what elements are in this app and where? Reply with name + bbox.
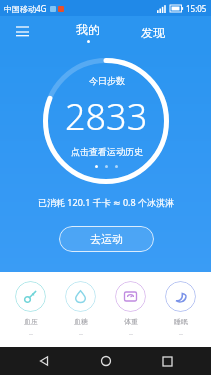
staticText: 去运动 <box>90 232 123 246</box>
staticText: 点击查看运动历史 <box>71 146 143 157</box>
staticText: 已消耗 120.1 千卡 ≈ 0.8 个冰淇淋 <box>38 196 174 208</box>
button[interactable]: 体重 <box>111 281 150 338</box>
staticText: 睡眠 <box>174 317 188 326</box>
button[interactable]: 我的 <box>68 20 108 45</box>
button[interactable]: 睡眠 <box>161 281 200 338</box>
staticText: 血压 <box>24 317 38 326</box>
button[interactable]: Home <box>89 347 123 375</box>
staticText: -- <box>29 330 33 338</box>
staticText: -- <box>179 330 183 338</box>
staticText: 2833 <box>65 92 148 141</box>
staticText: 血糖 <box>74 317 88 326</box>
staticText: -- <box>79 330 83 338</box>
staticText: 体重 <box>124 317 138 326</box>
staticText: 15:05 <box>186 3 207 14</box>
staticText: -- <box>129 330 133 338</box>
button[interactable]: 血压 <box>11 281 50 338</box>
button[interactable]: 血糖 <box>61 281 100 338</box>
button[interactable]: Back <box>27 347 61 375</box>
button[interactable]: Step history <box>43 58 169 184</box>
staticText: 发现 <box>141 25 165 40</box>
button[interactable]: Recents <box>150 347 184 375</box>
button[interactable]: 发现 <box>133 21 173 44</box>
button[interactable]: Menu <box>8 18 36 46</box>
staticText: 我的 <box>76 22 100 37</box>
staticText: 今日步数 <box>89 75 125 86</box>
staticText: 中国移动4G <box>4 3 47 14</box>
button[interactable]: 去运动 <box>59 226 154 252</box>
